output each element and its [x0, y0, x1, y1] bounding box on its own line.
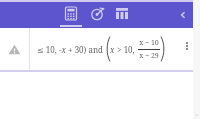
button[interactable]: More options [181, 28, 193, 70]
button[interactable]: Collapse [173, 5, 193, 25]
button[interactable]: Table [110, 2, 134, 28]
staticText: ≤ 10, [37, 44, 59, 55]
button[interactable]: Calculator [58, 2, 84, 28]
staticText: > 10, [115, 44, 137, 55]
staticText: x [110, 44, 115, 55]
button[interactable]: Geometry [85, 2, 109, 28]
button[interactable]: Warning [0, 28, 29, 70]
staticText: + 30) and [66, 44, 106, 55]
staticText: x − 29 [139, 51, 159, 61]
staticText: x − 10 [139, 38, 159, 48]
staticText: −x [59, 44, 66, 55]
button[interactable]: Warning [0, 28, 193, 70]
